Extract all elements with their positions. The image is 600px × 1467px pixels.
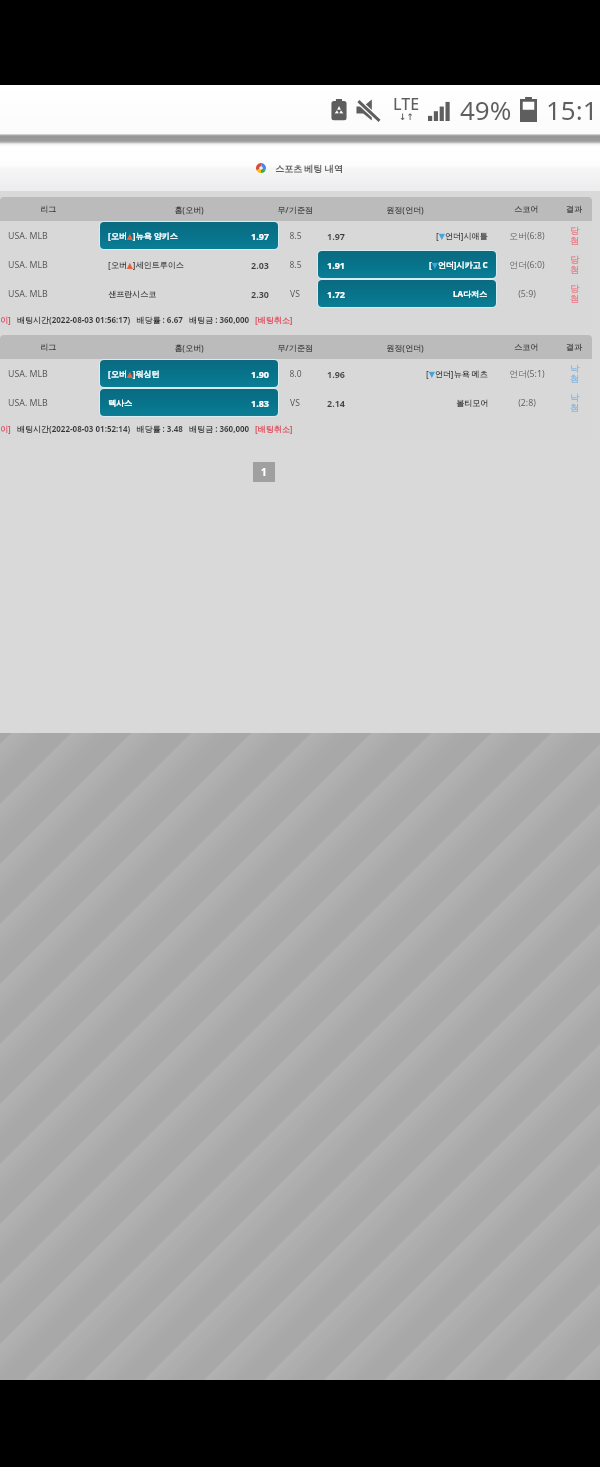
other: Muted [356, 99, 380, 121]
button[interactable]: 1 [253, 462, 275, 482]
staticText: 이] [0, 423, 11, 434]
staticText: 1.96 [327, 368, 345, 380]
staticText: 8.5 [289, 230, 302, 242]
staticText: 리그 [40, 204, 56, 214]
staticText: 1.91 [327, 259, 345, 271]
staticText: 결과 [566, 204, 582, 214]
button[interactable]: 1.72 [318, 280, 496, 307]
staticText: USA. MLB [8, 288, 48, 300]
staticText: 스코어 [514, 342, 538, 352]
staticText: LA다저스 [453, 288, 488, 299]
button[interactable]: [배팅취소] [255, 423, 293, 434]
staticText: LTE [393, 93, 420, 115]
staticText: 배팅시간(2022-08-03 01:56:17) 배당률 : 6.67 배팅금… [17, 314, 250, 325]
button[interactable]: [오버▲]워싱턴 [100, 360, 278, 387]
other: Signal strength [428, 102, 450, 121]
other: Battery 49 percent [520, 97, 537, 122]
staticText: 언더(5:1) [509, 368, 545, 380]
staticText: 원정(언더) [386, 342, 424, 353]
staticText: 스포츠 베팅 내역 [275, 162, 343, 174]
staticText: 샌프란시스코 [108, 289, 156, 299]
staticText: USA. MLB [8, 368, 48, 380]
staticText: [▼언더]시카고 C [429, 259, 488, 270]
staticText: 8.0 [289, 368, 302, 380]
staticText: [▼언더]시애틀 [436, 230, 488, 241]
staticText: 2.03 [251, 259, 269, 271]
staticText: 당 첨 [570, 254, 579, 276]
staticText: 당 첨 [570, 283, 579, 305]
staticText: [오버▲]뉴욕 양키스 [108, 230, 178, 241]
staticText: [오버▲]세인트루이스 [108, 259, 184, 270]
button[interactable]: [오버▲]뉴욕 양키스 [100, 222, 278, 249]
staticText: 리그 [40, 342, 56, 352]
staticText: 이] [0, 314, 11, 325]
button[interactable]: [오버▲]세인트루이스 [100, 251, 278, 278]
staticText: 1.97 [327, 230, 345, 242]
staticText: 1.83 [251, 397, 269, 409]
button[interactable]: 2.14 [318, 389, 496, 416]
staticText: VS [290, 397, 300, 409]
staticText: USA. MLB [8, 259, 48, 271]
button[interactable]: 1.96 [318, 360, 496, 387]
button[interactable]: 스포츠 베팅 내역 [256, 162, 343, 174]
staticText: 49% [460, 92, 512, 127]
staticText: 스코어 [514, 204, 538, 214]
staticText: [오버▲]워싱턴 [108, 368, 160, 379]
button[interactable]: 1.97 [318, 222, 496, 249]
staticText: USA. MLB [8, 230, 48, 242]
staticText: [▼언더]뉴욕 메츠 [426, 368, 488, 379]
staticText: 홈(오버) [174, 342, 204, 353]
staticText: 무/기준점 [277, 204, 313, 215]
staticText: 1 [261, 465, 267, 479]
staticText: 15:11 [546, 92, 600, 127]
staticText: 2.14 [327, 397, 345, 409]
staticText: (5:9) [518, 288, 536, 300]
staticText: 텍사스 [108, 398, 132, 408]
staticText: 당 첨 [570, 225, 579, 247]
staticText: 배팅시간(2022-08-03 01:52:14) 배당률 : 3.48 배팅금… [17, 423, 250, 434]
staticText: 무/기준점 [277, 342, 313, 353]
staticText: (2:8) [518, 397, 536, 409]
button[interactable]: 샌프란시스코 [100, 280, 278, 307]
staticText: 원정(언더) [386, 204, 424, 215]
other: Battery saver [330, 99, 348, 121]
button[interactable]: 1.91 [318, 251, 496, 278]
staticText: ↓↑ [399, 112, 415, 122]
staticText: 언더(6:0) [509, 259, 545, 271]
staticText: 8.5 [289, 259, 302, 271]
staticText: 낙 첨 [570, 363, 579, 385]
staticText: VS [290, 288, 300, 300]
button[interactable]: 텍사스 [100, 389, 278, 416]
staticText: USA. MLB [8, 397, 48, 409]
staticText: 결과 [566, 342, 582, 352]
staticText: 낙 첨 [570, 392, 579, 414]
staticText: 1.97 [251, 230, 269, 242]
staticText: 2.30 [251, 288, 269, 300]
staticText: 1.72 [327, 288, 345, 300]
staticText: 오버(6:8) [509, 230, 545, 242]
staticText: 볼티모어 [456, 398, 488, 408]
staticText: 1.90 [251, 368, 269, 380]
button[interactable]: [배팅취소] [255, 314, 293, 325]
staticText: 홈(오버) [174, 204, 204, 215]
